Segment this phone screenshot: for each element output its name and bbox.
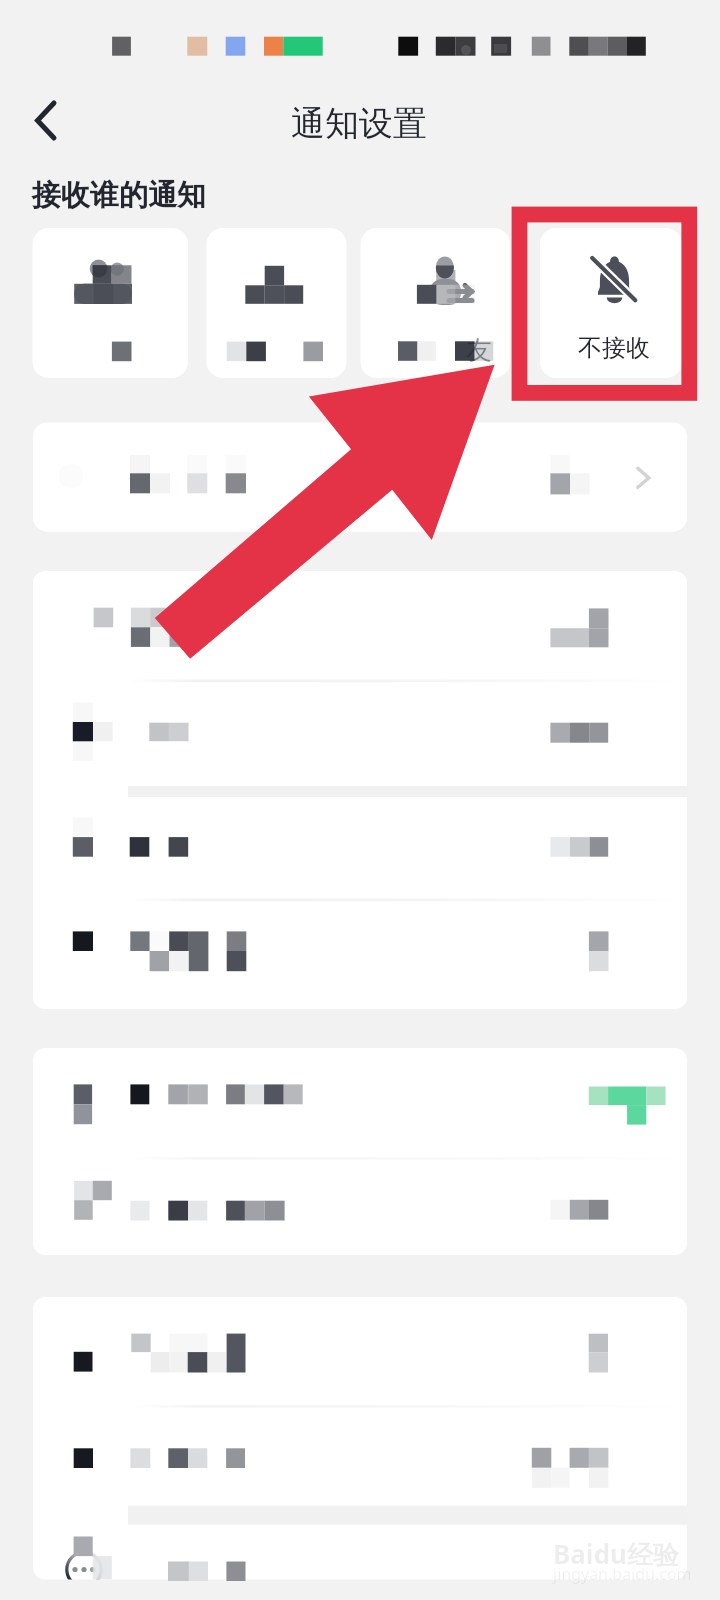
staticText: 接收谁的通知 xyxy=(32,177,206,214)
button[interactable] xyxy=(33,571,687,680)
staticText: 不接收 xyxy=(578,333,650,363)
staticText: Baidu经验 xyxy=(553,1536,679,1572)
button[interactable] xyxy=(33,790,687,899)
staticText: 通知设置 xyxy=(291,102,427,145)
button[interactable]: 消息提醒设置 xyxy=(33,423,687,532)
button[interactable] xyxy=(33,1048,687,1156)
button[interactable]: 不接收 xyxy=(540,228,682,378)
button[interactable] xyxy=(33,1297,687,1405)
button[interactable]: 全部联系人 xyxy=(32,228,188,378)
button[interactable]: 仅群组 xyxy=(206,228,346,378)
button[interactable] xyxy=(33,1405,687,1511)
button[interactable] xyxy=(33,680,687,787)
button[interactable] xyxy=(33,899,687,1009)
button[interactable]: 仅好友 xyxy=(360,228,510,378)
button[interactable] xyxy=(33,1156,687,1255)
staticText: jingyan.baidu.com xyxy=(553,1563,692,1585)
button[interactable] xyxy=(33,1522,687,1580)
button[interactable]: 返回 xyxy=(20,94,72,146)
staticText: 友 xyxy=(466,334,492,367)
